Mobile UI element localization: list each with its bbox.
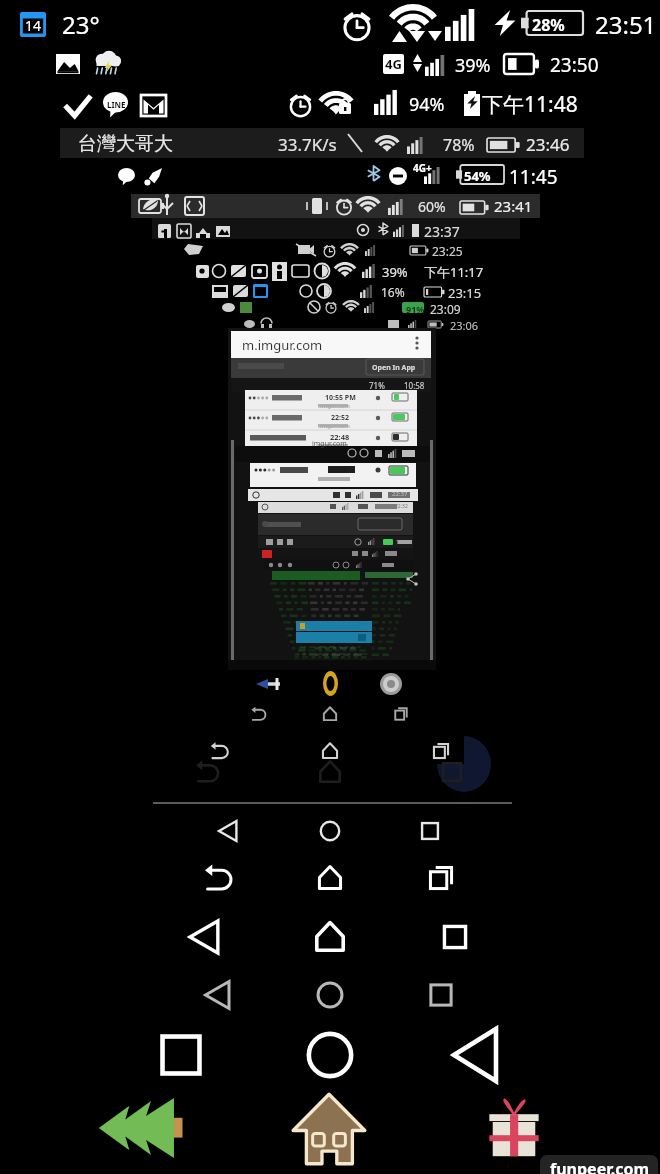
staticText: 22:32 <box>395 503 408 510</box>
button[interactable]: Home <box>319 703 341 725</box>
staticText: 23:09 <box>430 301 461 317</box>
button[interactable]: Home <box>304 1029 356 1081</box>
button[interactable]: Recents <box>417 818 443 844</box>
staticText: 22:52 <box>331 413 349 423</box>
staticText: imgur.com <box>320 402 350 410</box>
staticText: 78% <box>443 134 475 156</box>
button[interactable]: Calendar day 14 <box>20 12 46 37</box>
button[interactable]: Home <box>315 863 345 893</box>
staticText: 23° <box>62 8 100 41</box>
staticText: LINE <box>107 99 126 110</box>
staticText: 23:37 <box>424 222 460 241</box>
staticText: 60% <box>418 197 446 216</box>
staticText: funpeer.com <box>550 1158 650 1174</box>
staticText: 94% <box>409 92 445 117</box>
staticText: 23:51 <box>595 8 657 41</box>
staticText: m.imgur.com <box>242 336 323 354</box>
staticText: 39% <box>382 263 408 281</box>
staticText: 10:28 <box>396 539 409 546</box>
staticText: 91% <box>406 303 425 315</box>
button[interactable]: Home <box>290 1092 368 1166</box>
staticText: 4G+ <box>413 161 432 175</box>
staticText: 11:45 <box>509 164 558 190</box>
button[interactable]: Back <box>207 738 233 764</box>
button[interactable]: Home <box>317 818 343 844</box>
button[interactable]: Recents <box>486 1098 542 1158</box>
button[interactable]: Back <box>188 919 224 955</box>
staticText: 10:58 <box>404 380 425 391</box>
staticText: 54% <box>464 167 491 185</box>
button[interactable]: Back <box>204 863 234 893</box>
button[interactable]: Home <box>317 738 343 764</box>
button[interactable]: Recents <box>428 738 454 764</box>
staticText: 33.7K/s <box>278 133 337 156</box>
button[interactable]: Back <box>97 1098 187 1158</box>
staticText: 4G <box>385 55 402 73</box>
staticText: 下午11:17 <box>424 263 484 281</box>
staticText: 23:06 <box>450 318 479 333</box>
button[interactable]: Recents <box>425 979 457 1011</box>
button[interactable]: Back <box>452 1029 504 1081</box>
staticText: imgur.com <box>312 439 347 449</box>
button[interactable]: Back <box>216 818 242 844</box>
staticText: 71% <box>369 380 385 391</box>
button[interactable]: Recents <box>155 1029 207 1081</box>
staticText: 下午11:48 <box>482 90 578 119</box>
button[interactable]: Back <box>248 703 270 725</box>
staticText: 39% <box>455 53 491 78</box>
staticText: 16% <box>381 284 405 300</box>
staticText: 23:41 <box>494 196 533 216</box>
button[interactable]: Recents <box>390 703 412 725</box>
staticText: 23:46 <box>526 133 570 156</box>
staticText: 22:48 <box>330 432 350 442</box>
staticText: 14 <box>25 16 42 35</box>
button[interactable]: Home <box>314 979 346 1011</box>
staticText: 23:15 <box>448 284 482 302</box>
button[interactable]: Home <box>312 919 348 955</box>
staticText: 台灣大哥大 <box>78 132 173 156</box>
staticText: 10:55 PM <box>325 393 356 403</box>
staticText: 23:25 <box>432 243 463 259</box>
staticText: 23:50 <box>550 52 599 78</box>
staticText: imgur.com <box>320 422 350 430</box>
button[interactable]: Back <box>203 979 235 1011</box>
staticText: 28% <box>532 14 565 36</box>
staticText: Open In App <box>372 363 416 373</box>
button[interactable]: funpeer.com <box>540 1155 658 1174</box>
staticText: 22:39 <box>328 465 346 475</box>
button[interactable]: Recents <box>437 919 473 955</box>
button[interactable]: Recents <box>426 863 456 893</box>
staticText: 22:37 <box>392 490 408 498</box>
